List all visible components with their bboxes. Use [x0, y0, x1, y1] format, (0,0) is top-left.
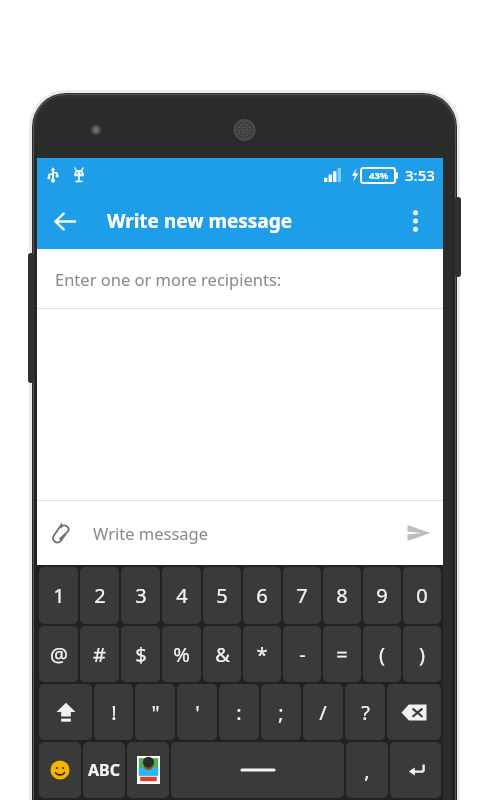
- button[interactable]: $: [121, 626, 160, 682]
- staticText: $: [135, 641, 147, 668]
- staticText: ABC: [88, 759, 120, 781]
- staticText: ;: [278, 699, 284, 726]
- button[interactable]: ABC: [83, 742, 125, 798]
- button[interactable]: #: [80, 626, 119, 682]
- button[interactable]: *: [243, 626, 281, 682]
- button[interactable]: Backspace: [387, 684, 441, 740]
- button[interactable]: Space: [171, 742, 344, 798]
- button[interactable]: %: [162, 626, 201, 682]
- button[interactable]: Enter: [390, 742, 441, 798]
- staticText: ,: [364, 757, 370, 784]
- button[interactable]: Stickers: [127, 742, 169, 798]
- staticText: -: [299, 641, 306, 668]
- staticText: 7: [296, 582, 308, 609]
- staticText: 2: [94, 582, 106, 609]
- button[interactable]: 7: [283, 567, 321, 624]
- button[interactable]: Emoji: [39, 742, 81, 798]
- staticText: 4: [176, 582, 188, 609]
- staticText: 3: [135, 582, 147, 609]
- staticText: :: [236, 699, 242, 726]
- button[interactable]: /: [303, 684, 343, 740]
- button[interactable]: 2: [80, 567, 119, 624]
- staticText: ): [419, 641, 425, 668]
- button[interactable]: ?: [345, 684, 385, 740]
- staticText: @: [50, 641, 68, 668]
- staticText: 1: [53, 582, 65, 609]
- staticText: 6: [256, 582, 268, 609]
- button[interactable]: 4: [162, 567, 201, 624]
- button[interactable]: Send: [395, 509, 443, 557]
- button[interactable]: ": [135, 684, 175, 740]
- staticText: 8: [336, 582, 348, 609]
- staticText: ?: [361, 699, 370, 726]
- button[interactable]: Attach file: [37, 509, 85, 557]
- button[interactable]: @: [39, 626, 78, 682]
- staticText: Enter one or more recipients:: [55, 268, 282, 290]
- button[interactable]: Write message: [85, 522, 395, 544]
- staticText: 9: [376, 582, 388, 609]
- button[interactable]: &: [203, 626, 241, 682]
- button[interactable]: Shift: [39, 684, 92, 740]
- staticText: *: [256, 641, 268, 668]
- button[interactable]: 3: [121, 567, 160, 624]
- staticText: 43%: [369, 169, 389, 182]
- button[interactable]: 0: [403, 567, 441, 624]
- button[interactable]: Back: [37, 193, 93, 249]
- button[interactable]: :: [219, 684, 259, 740]
- button[interactable]: Enter one or more recipients:: [37, 249, 443, 308]
- staticText: 3:53: [405, 165, 435, 185]
- button[interactable]: More options: [391, 197, 439, 245]
- button[interactable]: (: [363, 626, 401, 682]
- staticText: %: [173, 641, 190, 668]
- button[interactable]: -: [283, 626, 321, 682]
- button[interactable]: =: [323, 626, 361, 682]
- staticText: !: [111, 699, 117, 726]
- button[interactable]: 6: [243, 567, 281, 624]
- staticText: Write new message: [107, 208, 293, 234]
- staticText: ': [195, 699, 200, 726]
- button[interactable]: ,: [346, 742, 388, 798]
- staticText: /: [319, 699, 327, 726]
- button[interactable]: ): [403, 626, 441, 682]
- staticText: &: [215, 641, 230, 668]
- staticText: Write message: [93, 522, 209, 544]
- button[interactable]: 1: [39, 567, 78, 624]
- button[interactable]: 8: [323, 567, 361, 624]
- button[interactable]: ;: [261, 684, 301, 740]
- button[interactable]: 5: [203, 567, 241, 624]
- staticText: =: [336, 641, 348, 668]
- staticText: ": [151, 699, 160, 726]
- staticText: 5: [216, 582, 228, 609]
- staticText: (: [379, 641, 385, 668]
- staticText: #: [93, 641, 106, 668]
- button[interactable]: ': [177, 684, 217, 740]
- staticText: 0: [416, 582, 428, 609]
- button[interactable]: 9: [363, 567, 401, 624]
- button[interactable]: !: [94, 684, 133, 740]
